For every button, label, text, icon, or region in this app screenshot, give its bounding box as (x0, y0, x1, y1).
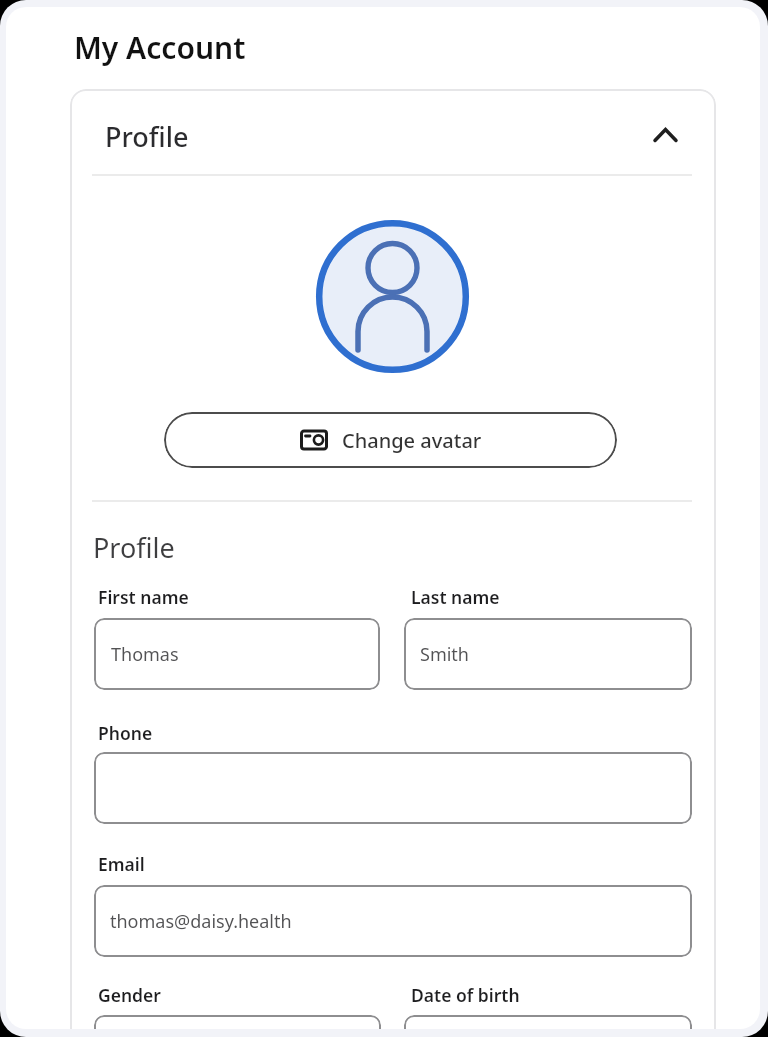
staticText: Date of birth (411, 983, 520, 1007)
staticText: First name (98, 585, 189, 609)
staticText: thomas@daisy.health (110, 909, 292, 934)
button[interactable] (94, 1015, 381, 1029)
staticText: Profile (93, 529, 175, 566)
button[interactable] (404, 1015, 692, 1029)
button[interactable] (94, 752, 692, 824)
button[interactable]: Smith (404, 618, 692, 690)
staticText: Gender (98, 983, 161, 1007)
button[interactable]: thomas@daisy.health (94, 885, 692, 957)
staticText: Change avatar (342, 427, 482, 454)
staticText: Last name (411, 585, 500, 609)
staticText: Phone (98, 721, 153, 745)
button[interactable]: Thomas (94, 618, 380, 690)
staticText: My Account (74, 27, 246, 68)
staticText: Smith (420, 642, 469, 667)
staticText: Thomas (111, 642, 179, 667)
staticText: Email (98, 852, 145, 876)
button[interactable]: Change avatar (164, 412, 617, 468)
button[interactable]: Profile (70, 103, 716, 167)
staticText: Profile (105, 118, 189, 155)
